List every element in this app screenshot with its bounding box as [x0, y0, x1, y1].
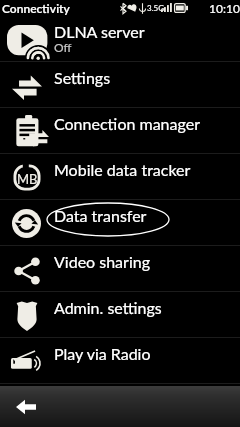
button[interactable]: Settings	[0, 62, 240, 108]
button[interactable]: Data transfer	[0, 200, 240, 246]
staticText: Settings	[54, 68, 111, 87]
button[interactable]: Video sharing	[0, 246, 240, 292]
staticText: Mobile data tracker	[54, 160, 191, 179]
button[interactable]: Admin. settings	[0, 292, 240, 338]
staticText: Admin. settings	[54, 298, 162, 317]
staticText: 10:10	[209, 1, 240, 15]
button[interactable]: DLNA server	[0, 16, 240, 62]
button[interactable]: Play via Radio	[0, 338, 240, 384]
button[interactable]: MB	[0, 154, 240, 200]
button[interactable]: Connection manager	[0, 108, 240, 154]
staticText: Connection manager	[54, 114, 200, 133]
staticText: Data transfer	[54, 206, 147, 225]
staticText: MB	[17, 171, 38, 187]
staticText: Play via Radio	[54, 344, 151, 363]
staticText: Off	[54, 40, 72, 54]
staticText: Connectivity	[2, 1, 70, 15]
staticText: DLNA server	[54, 22, 145, 41]
staticText: 3.5G	[147, 3, 165, 13]
staticText: Video sharing	[54, 252, 150, 271]
button[interactable]: Back	[8, 389, 44, 425]
